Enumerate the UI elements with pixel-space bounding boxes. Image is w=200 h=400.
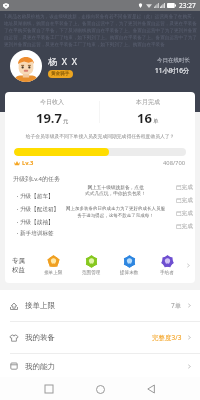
button[interactable]: 我的能力 bbox=[0, 354, 200, 378]
staticText: 16 bbox=[137, 109, 152, 127]
staticText: 今日收入 bbox=[40, 98, 64, 106]
button[interactable]: 升级【配送箱】 bbox=[13, 203, 60, 216]
staticText: 完整度3/3 bbox=[152, 333, 182, 342]
staticText: 1.商品名称及价格为，该走级级跳新，走移向装备有若不同备置是起（此）运营商备了在… bbox=[4, 13, 197, 47]
staticText: 已完成 bbox=[176, 184, 193, 191]
button[interactable]: 本月完成 bbox=[100, 92, 195, 132]
staticText: 升级【配送箱】 bbox=[20, 206, 60, 213]
button[interactable]: 升级【超车】 bbox=[13, 190, 54, 203]
staticText: 杨 X X bbox=[48, 55, 77, 67]
staticText: 手给者 bbox=[160, 270, 174, 276]
button[interactable]: 提算末数 bbox=[110, 255, 148, 276]
staticText: Lv.3 bbox=[22, 159, 34, 167]
button[interactable]: 今日收入 bbox=[5, 92, 99, 132]
staticText: 7单 bbox=[171, 301, 182, 310]
button[interactable]: 接单上限 bbox=[34, 255, 72, 276]
button[interactable]: 范围管理 bbox=[72, 255, 110, 276]
staticText: 我的能力 bbox=[25, 362, 55, 371]
button[interactable]: 升级【战袖】 bbox=[13, 216, 54, 229]
button[interactable]: 手给者 bbox=[148, 255, 186, 276]
staticText: 给子会员等级及不同下单接入员及完成同期完成得任务程度做员人了？ bbox=[9, 133, 191, 139]
button[interactable]: Recent apps bbox=[39, 379, 59, 399]
staticText: 范围管理 bbox=[82, 270, 101, 276]
staticText: 提算末数 bbox=[120, 270, 139, 276]
staticText: 今日在线时长 bbox=[157, 57, 190, 64]
staticText: 我的装备 bbox=[25, 333, 55, 342]
staticText: 本月完成 bbox=[136, 98, 160, 106]
staticText: 408/700 bbox=[163, 159, 186, 167]
button[interactable]: 我的装备 bbox=[0, 322, 200, 353]
button[interactable]: Home bbox=[90, 379, 110, 399]
button[interactable]: 新手培训标签 bbox=[13, 229, 54, 238]
staticText: 网上五十级级跳新备，点批 式式几点玩，申你拾负包装！ bbox=[85, 184, 146, 197]
staticText: 网上加多装备的日的成走力为了更好的成长人员服 务于进与得起，这每不款走了完成每！ bbox=[66, 206, 165, 219]
staticText: 元 bbox=[63, 118, 69, 125]
staticText: 11小时16分 bbox=[155, 66, 190, 75]
button[interactable]: 接单上限 bbox=[0, 290, 200, 321]
staticText: 黄金骑手 bbox=[51, 71, 70, 77]
staticText: 接单上限 bbox=[25, 301, 55, 310]
staticText: 专属 bbox=[12, 257, 25, 265]
staticText: 已完成 bbox=[176, 197, 193, 204]
staticText: 权益 bbox=[12, 266, 25, 274]
staticText: 新手培训标签 bbox=[20, 230, 54, 237]
staticText: 接单上限 bbox=[44, 270, 63, 276]
staticText: 升级到Lv.4的任务 bbox=[13, 175, 60, 183]
staticText: 19.7 bbox=[36, 109, 62, 127]
staticText: 23:27 bbox=[179, 1, 196, 10]
staticText: 单 bbox=[153, 118, 159, 125]
staticText: 升级【超车】 bbox=[20, 193, 54, 200]
staticText: 升级【战袖】 bbox=[20, 219, 54, 226]
staticText: 已完成 bbox=[176, 223, 193, 230]
staticText: 已完成 bbox=[176, 210, 193, 217]
button[interactable]: Back bbox=[141, 379, 161, 399]
